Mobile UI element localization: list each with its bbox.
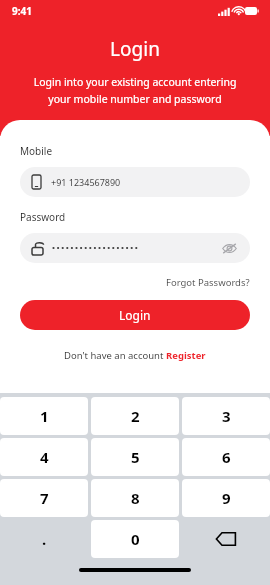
- button[interactable]: +91 1234567890: [20, 167, 250, 197]
- button[interactable]: .: [0, 520, 88, 558]
- staticText: +91 1234567890: [51, 176, 121, 188]
- staticText: 7: [40, 488, 49, 508]
- staticText: Don't have an account: [64, 349, 166, 362]
- staticText: Login: [0, 36, 270, 62]
- button[interactable]: 4: [0, 438, 88, 476]
- staticText: 0: [131, 529, 140, 549]
- button[interactable]: Register: [166, 349, 206, 362]
- staticText: 1: [40, 406, 49, 426]
- staticText: 2: [131, 406, 140, 426]
- button[interactable]: 6: [182, 438, 270, 476]
- staticText: .: [42, 529, 47, 549]
- button[interactable]: 5: [91, 438, 179, 476]
- staticText: 3: [222, 406, 231, 426]
- button[interactable]: 1: [0, 397, 88, 435]
- button[interactable]: Login: [20, 300, 250, 330]
- staticText: Login: [119, 307, 151, 323]
- staticText: 6: [222, 447, 231, 467]
- button[interactable]: 2: [91, 397, 179, 435]
- button[interactable]: 7: [0, 479, 88, 517]
- staticText: Login into your existing account enterin…: [16, 75, 254, 106]
- button[interactable]: 0: [91, 520, 179, 558]
- button[interactable]: 8: [91, 479, 179, 517]
- staticText: 8: [131, 488, 140, 508]
- staticText: 9: [222, 488, 231, 508]
- button[interactable]: Backspace: [182, 520, 270, 558]
- staticText: Mobile: [20, 144, 53, 158]
- staticText: 9:41: [12, 4, 32, 18]
- staticText: 5: [131, 447, 140, 467]
- staticText: Password: [20, 210, 66, 224]
- button[interactable]: Show password: [220, 239, 238, 257]
- button[interactable]: 3: [182, 397, 270, 435]
- button[interactable]: Show password: [20, 233, 250, 263]
- button[interactable]: Forgot Passwords?: [166, 276, 250, 289]
- button[interactable]: 9: [182, 479, 270, 517]
- staticText: 4: [40, 447, 49, 467]
